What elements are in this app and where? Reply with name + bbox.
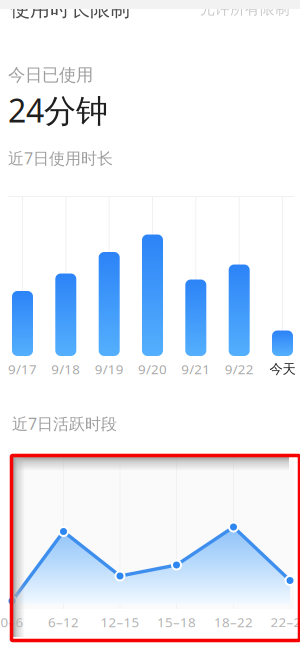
- staticText: 6–12: [48, 613, 79, 631]
- staticText: 今日已使用: [8, 64, 93, 86]
- staticText: 近7日活跃时段: [12, 413, 117, 434]
- staticText: 12–15: [100, 613, 139, 631]
- staticText: 允许所有限制: [200, 0, 290, 18]
- button[interactable]: 使用时长限制: [0, 0, 300, 20]
- staticText: 近7日使用时长: [8, 147, 113, 169]
- staticText: 9/17: [8, 360, 37, 378]
- staticText: 22–24: [270, 613, 300, 631]
- staticText: 9/21: [181, 360, 210, 378]
- staticText: 使用时长限制: [10, 0, 130, 21]
- staticText: 15–18: [157, 613, 196, 631]
- staticText: 今天: [269, 361, 295, 377]
- staticText: 18–22: [214, 613, 253, 631]
- staticText: 9/18: [51, 360, 80, 378]
- staticText: 9/19: [95, 360, 124, 378]
- staticText: 9/22: [225, 360, 254, 378]
- staticText: 24分钟: [8, 89, 108, 131]
- staticText: 0–6: [0, 613, 23, 631]
- staticText: 9/20: [138, 360, 167, 378]
